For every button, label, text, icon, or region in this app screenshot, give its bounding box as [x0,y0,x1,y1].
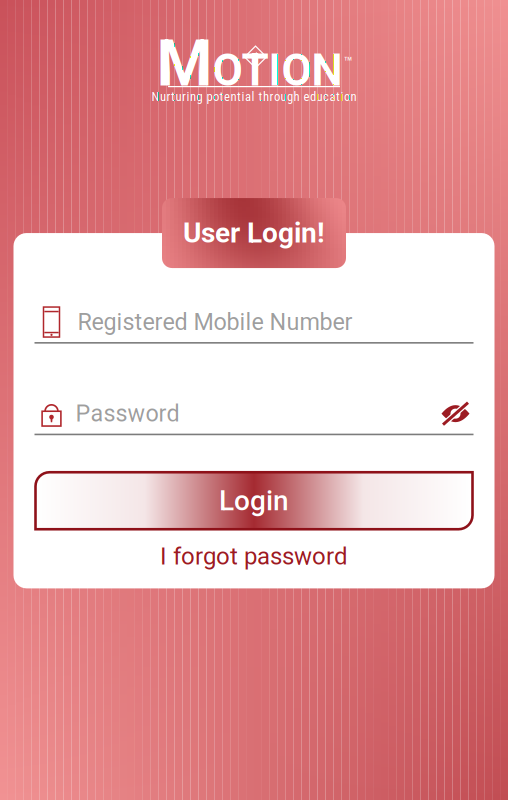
staticText: I forgot password [160,542,348,570]
staticText: ™ [343,54,352,71]
button[interactable]: Login [35,472,472,529]
staticText: Login [219,484,289,517]
staticText: M [156,26,212,101]
staticText: OT [212,45,268,96]
staticText: Nurturing potential through education [151,89,356,104]
staticText: User Login! [183,217,325,249]
staticText: ON [281,45,342,96]
staticText: Password [75,400,179,427]
staticText: Registered Mobile Number [77,308,352,336]
button[interactable]: I forgot password [146,537,362,575]
button[interactable]: Show password [437,398,473,430]
staticText: I [268,45,281,96]
